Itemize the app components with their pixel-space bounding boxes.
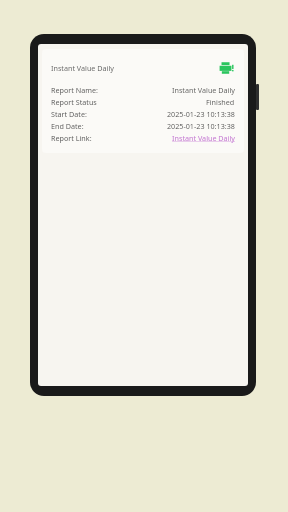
staticText: 2025-01-23 10:13:38: [167, 121, 235, 131]
button[interactable]: Print report: [216, 58, 235, 77]
staticText: 2025-01-23 10:13:38: [167, 109, 235, 119]
staticText: Report Status: [51, 97, 97, 107]
staticText: Start Date:: [51, 109, 87, 119]
staticText: Instant Value Daily: [51, 63, 216, 73]
button[interactable]: Instant Value Daily: [42, 49, 244, 153]
staticText: Report Name:: [51, 85, 98, 95]
button[interactable]: Instant Value Daily: [172, 133, 235, 143]
staticText: Instant Value Daily: [172, 85, 235, 95]
staticText: Instant Value Daily: [172, 133, 235, 143]
staticText: Report Link:: [51, 133, 92, 143]
staticText: End Date:: [51, 121, 84, 131]
staticText: Finished: [206, 97, 235, 107]
